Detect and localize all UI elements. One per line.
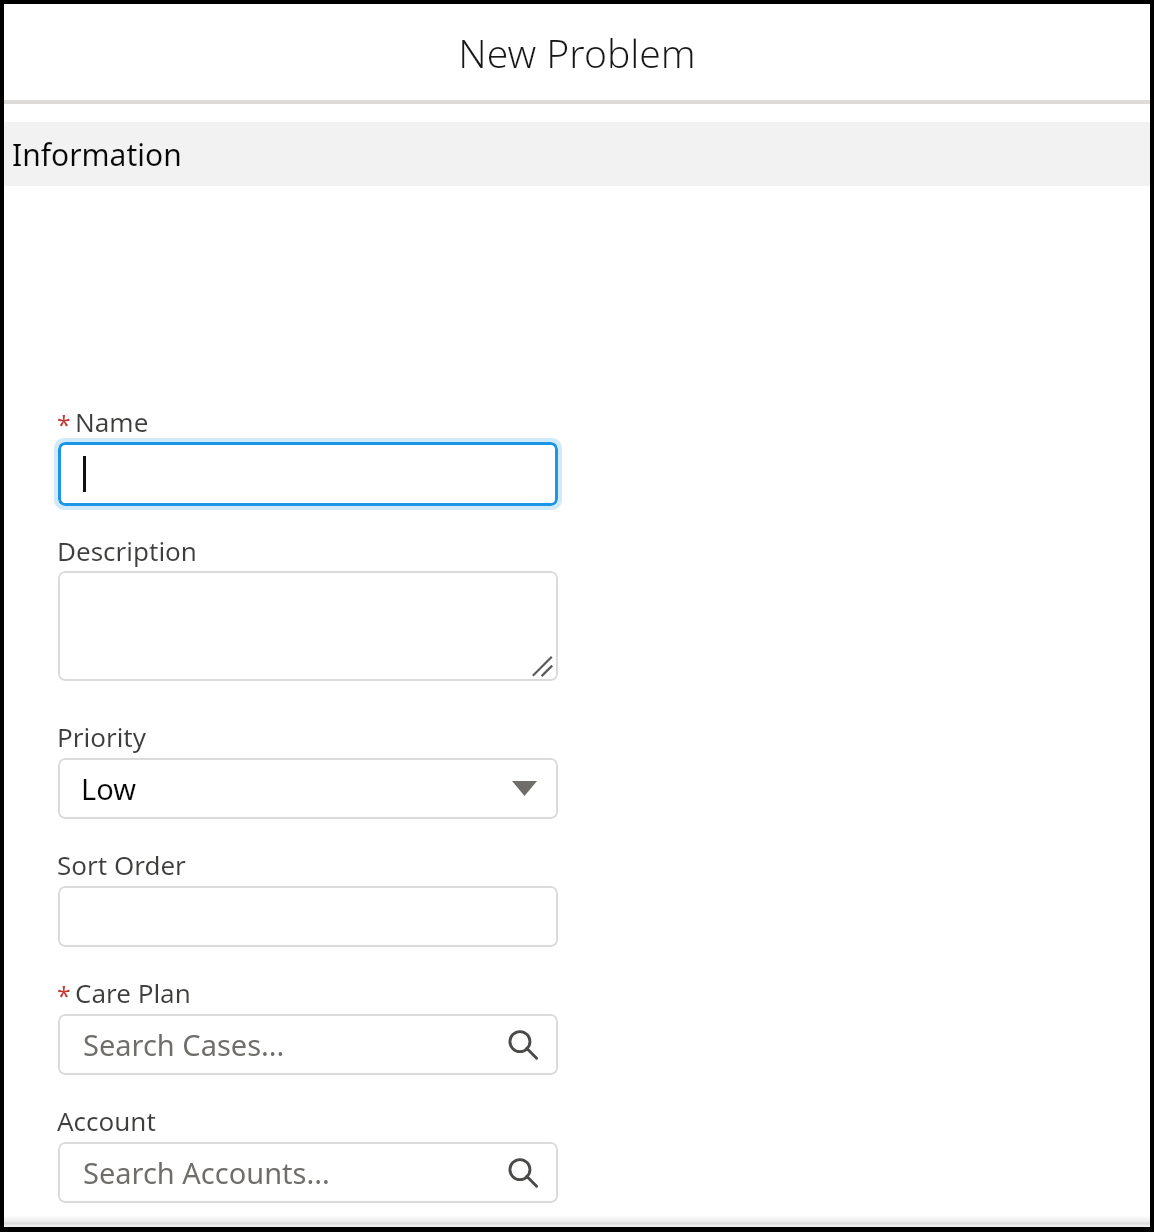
staticText: Care Plan bbox=[75, 975, 191, 1010]
staticText: New Problem bbox=[458, 26, 696, 79]
button[interactable]: Search bbox=[502, 1152, 544, 1194]
button[interactable] bbox=[58, 571, 558, 681]
staticText: Low bbox=[81, 769, 136, 808]
button[interactable]: Search bbox=[502, 1024, 544, 1066]
button[interactable]: Search Cases... bbox=[58, 1014, 558, 1075]
staticText: Sort Order bbox=[57, 847, 186, 882]
staticText: Account bbox=[57, 1103, 156, 1138]
button[interactable]: Low bbox=[58, 758, 558, 819]
staticText: Name bbox=[75, 404, 149, 439]
staticText: * bbox=[57, 978, 71, 1012]
staticText: Description bbox=[57, 533, 197, 568]
staticText: Information bbox=[12, 134, 182, 175]
button[interactable]: Search Accounts... bbox=[58, 1142, 558, 1203]
button[interactable]: Information bbox=[4, 122, 1150, 186]
staticText: Search Accounts... bbox=[83, 1153, 330, 1192]
button[interactable] bbox=[58, 442, 558, 506]
button[interactable] bbox=[58, 886, 558, 947]
staticText: Priority bbox=[57, 719, 146, 754]
staticText: * bbox=[57, 407, 71, 441]
staticText: Search Cases... bbox=[83, 1025, 285, 1064]
